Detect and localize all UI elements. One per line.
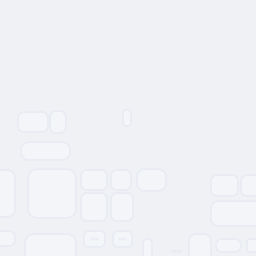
button[interactable]: Item 4: [81, 193, 107, 221]
button[interactable]: Action 4: [189, 234, 211, 256]
button[interactable]: Item 6: [211, 175, 238, 196]
button[interactable]: Item 5: [111, 193, 133, 221]
button[interactable]: Card caption: [21, 142, 70, 160]
button[interactable]: Action 2: [113, 231, 132, 247]
button[interactable]: Previous row: [0, 231, 15, 246]
button[interactable]: Item 7: [241, 175, 256, 196]
button[interactable]: Item 2: [111, 170, 131, 190]
button[interactable]: Badge: [123, 110, 131, 126]
button[interactable]: Card: [18, 112, 48, 132]
button[interactable]: Item 1: [81, 170, 107, 190]
button[interactable]: Item 8: [211, 201, 256, 226]
button[interactable]: Action 6: [247, 239, 256, 252]
button[interactable]: Previous item: [0, 170, 15, 217]
button[interactable]: Card thumbnail: [50, 111, 66, 133]
button[interactable]: Action 5: [216, 239, 241, 252]
button[interactable]: Item 3: [137, 169, 166, 191]
button[interactable]: Action 1: [84, 231, 105, 247]
button[interactable]: Action 3: [143, 239, 152, 256]
